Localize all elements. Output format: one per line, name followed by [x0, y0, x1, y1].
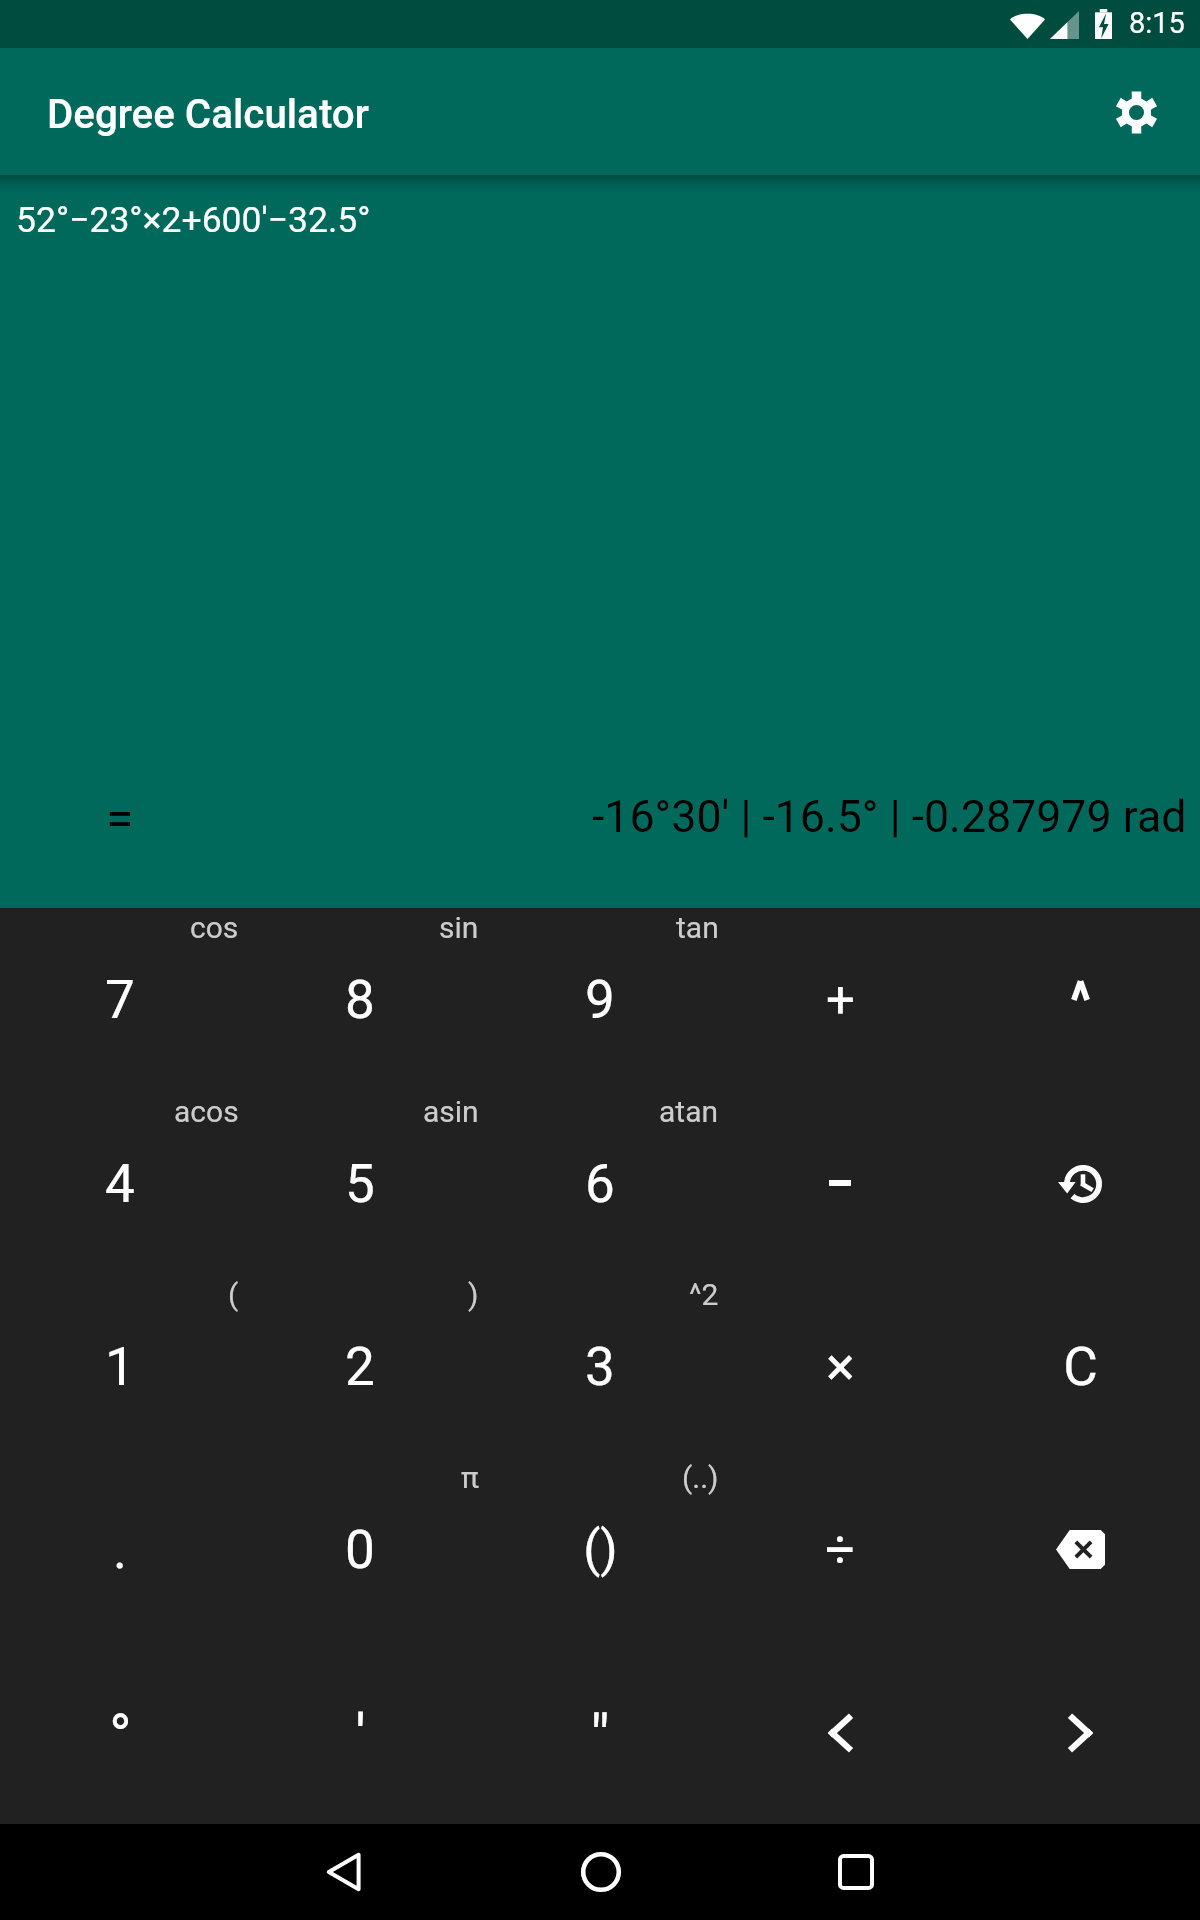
button[interactable]: Back [218, 1824, 473, 1920]
button[interactable]: + [720, 908, 960, 1092]
button[interactable]: Settings [1092, 68, 1180, 156]
staticText: 0 [345, 1519, 375, 1581]
button[interactable]: 5 [240, 1092, 480, 1275]
staticText: C [1063, 1336, 1098, 1398]
button[interactable]: 1 [0, 1275, 240, 1458]
staticText: 9 [585, 969, 615, 1031]
staticText: 8 [345, 969, 375, 1031]
staticText: asin [423, 1094, 479, 1129]
button[interactable]: ° [0, 1641, 240, 1824]
staticText: π [461, 1460, 479, 1495]
button[interactable]: Move cursor right [960, 1641, 1200, 1824]
button[interactable]: 6 [480, 1092, 720, 1275]
button[interactable]: Minus [720, 1092, 960, 1275]
button[interactable]: 3 [480, 1275, 720, 1458]
button[interactable]: 9 [480, 908, 720, 1092]
button[interactable]: 4 [0, 1092, 240, 1275]
staticText: 6 [585, 1153, 615, 1215]
button[interactable]: () [480, 1458, 720, 1641]
staticText: ' [355, 1701, 366, 1772]
staticText: . [113, 1519, 127, 1581]
button[interactable]: " [480, 1641, 720, 1824]
staticText: 4 [105, 1153, 135, 1215]
button[interactable]: History [960, 1092, 1200, 1275]
button[interactable]: Move cursor left [720, 1641, 960, 1824]
button[interactable]: 0 [240, 1458, 480, 1641]
staticText: 2 [345, 1336, 375, 1398]
staticText: tan [676, 910, 719, 945]
button[interactable]: × [720, 1275, 960, 1458]
staticText: Degree Calculator [47, 91, 369, 138]
staticText: ) [468, 1277, 479, 1312]
staticText: 52°−23°×2+600'−32.5° [16, 199, 371, 241]
button[interactable]: ' [240, 1641, 480, 1824]
staticText: cos [190, 910, 239, 945]
staticText: sin [439, 910, 479, 945]
staticText: ° [109, 1701, 132, 1772]
button[interactable]: Recent apps [728, 1824, 983, 1920]
staticText: 3 [585, 1336, 615, 1398]
staticText: () [583, 1520, 618, 1579]
staticText: 7 [105, 969, 135, 1031]
button[interactable]: Backspace [960, 1458, 1200, 1641]
button[interactable]: 8 [240, 908, 480, 1092]
button[interactable]: . [0, 1458, 240, 1641]
staticText: + [826, 970, 855, 1030]
staticText: acos [174, 1094, 239, 1129]
staticText: atan [659, 1094, 719, 1129]
staticText: 5 [345, 1153, 375, 1215]
staticText: (..) [682, 1460, 719, 1495]
staticText: = [106, 790, 134, 849]
button[interactable]: Home [473, 1824, 728, 1920]
staticText: -16°30' | -16.5° | -0.287979 rad [592, 791, 1187, 843]
button[interactable]: 2 [240, 1275, 480, 1458]
staticText: ( [228, 1277, 239, 1312]
staticText: " [590, 1701, 610, 1772]
staticText: ^2 [689, 1277, 719, 1312]
staticText: 1 [105, 1336, 135, 1398]
button[interactable]: C [960, 1275, 1200, 1458]
staticText: 8:15 [1129, 6, 1185, 40]
button[interactable]: 7 [0, 908, 240, 1092]
staticText: × [826, 1335, 855, 1398]
button[interactable]: ÷ [720, 1458, 960, 1641]
staticText: ÷ [825, 1519, 855, 1580]
button[interactable]: Power [960, 908, 1200, 1092]
